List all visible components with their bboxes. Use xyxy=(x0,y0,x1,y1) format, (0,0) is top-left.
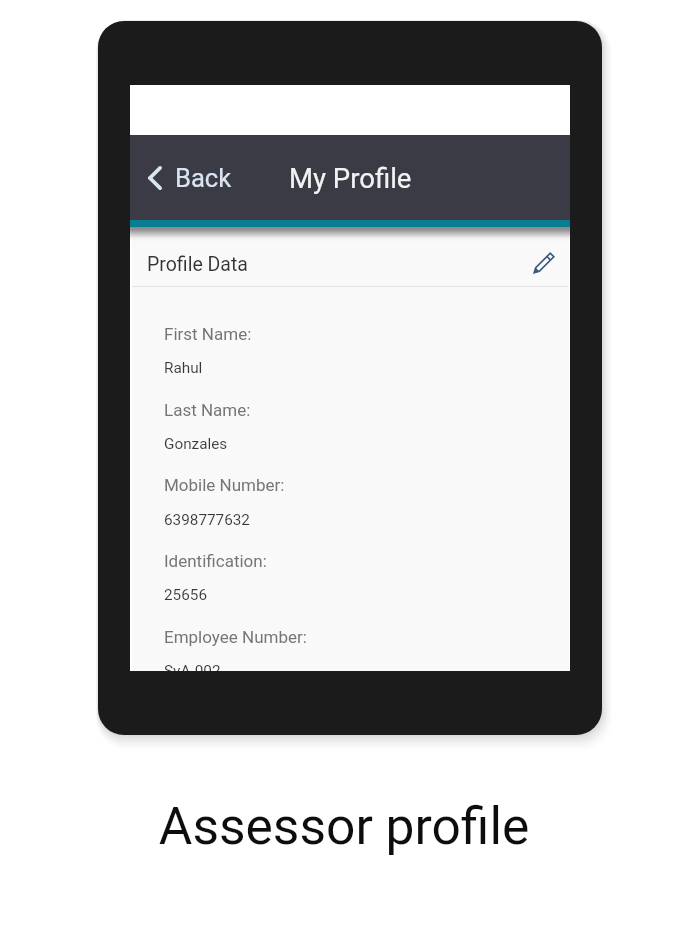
staticText: Employee Number: xyxy=(164,627,307,647)
staticText: My Profile xyxy=(289,162,412,194)
staticText: Assessor profile xyxy=(0,796,694,856)
staticText: Identification: xyxy=(164,551,267,571)
staticText: SvA-002 xyxy=(164,662,221,671)
staticText: Gonzales xyxy=(164,435,228,453)
staticText: Last Name: xyxy=(164,400,251,420)
staticText: 6398777632 xyxy=(164,511,250,529)
button[interactable]: Back xyxy=(130,153,244,203)
staticText: Rahul xyxy=(164,359,203,377)
staticText: 25656 xyxy=(164,586,207,604)
staticText: Profile Data xyxy=(147,253,248,276)
button[interactable]: Edit profile xyxy=(530,249,558,277)
staticText: Back xyxy=(175,163,232,193)
staticText: First Name: xyxy=(164,324,252,344)
staticText: Mobile Number: xyxy=(164,475,285,495)
